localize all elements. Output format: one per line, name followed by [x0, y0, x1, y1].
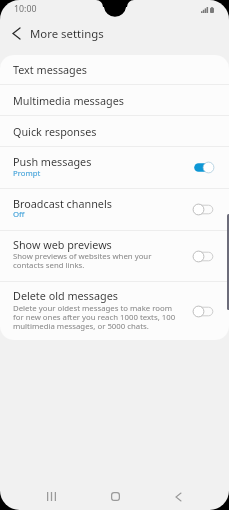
staticText: 10:00	[14, 3, 37, 15]
staticText: Multimedia messages	[13, 93, 124, 108]
button[interactable]: Recent apps	[33, 483, 69, 510]
button[interactable]: Toggle	[194, 203, 213, 216]
button[interactable]: Broadcast channels	[0, 189, 229, 230]
button[interactable]: Back	[160, 483, 196, 510]
button[interactable]: Push messages	[0, 147, 229, 188]
staticText: Show web previews	[13, 237, 112, 252]
button[interactable]: Toggle	[194, 305, 213, 318]
staticText: Off	[13, 209, 25, 220]
staticText: Prompt	[13, 168, 41, 179]
button[interactable]: Home	[97, 483, 133, 510]
staticText: More settings	[30, 26, 104, 42]
button[interactable]: Text messages	[0, 55, 229, 84]
staticText: Broadcast channels	[13, 196, 112, 211]
staticText: Delete old messages	[13, 288, 118, 303]
button[interactable]: Multimedia messages	[0, 85, 229, 115]
staticText: Quick responses	[13, 124, 97, 139]
button[interactable]: Toggle	[194, 161, 213, 174]
staticText: Delete your oldest messages to make room…	[13, 303, 176, 332]
staticText: Text messages	[13, 62, 88, 77]
button[interactable]: Quick responses	[0, 116, 229, 146]
staticText: Push messages	[13, 154, 92, 169]
button[interactable]: Navigate up	[0, 18, 30, 49]
staticText: Show previews of websites when your cont…	[13, 251, 152, 271]
button[interactable]: Show web previews	[0, 231, 229, 281]
button[interactable]: Delete old messages	[0, 282, 229, 340]
button[interactable]: Toggle	[194, 250, 213, 263]
